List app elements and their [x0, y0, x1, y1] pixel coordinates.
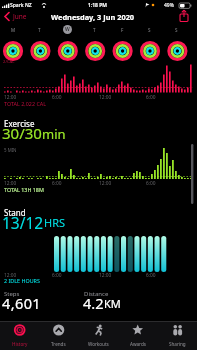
button[interactable]: Awards [118, 321, 157, 350]
button[interactable]: Sharing [158, 321, 197, 350]
staticText: 12:00 [4, 94, 17, 101]
staticText: KM [104, 296, 121, 311]
staticText: 12:00 [99, 94, 112, 101]
staticText: Stand [4, 207, 26, 218]
staticText: F [121, 27, 124, 33]
staticText: Distance [84, 290, 109, 298]
staticText: 12:00 [99, 272, 112, 279]
button[interactable]: June [2, 10, 36, 23]
staticText: S [148, 27, 151, 33]
staticText: June [13, 12, 27, 21]
button[interactable]: Trends [39, 321, 78, 350]
staticText: 1:18 PM [88, 2, 107, 9]
staticText: 12:00 [4, 180, 17, 187]
staticText: Spark NZ [10, 2, 32, 9]
staticText: Workouts [88, 341, 109, 347]
staticText: T [93, 27, 96, 33]
staticText: TOTAL 2,022 CAL [4, 100, 47, 107]
staticText: TOTAL 13H 18M [4, 186, 44, 193]
staticText: History [12, 341, 28, 347]
staticText: 6:00 [146, 180, 156, 187]
staticText: min [42, 125, 66, 143]
button[interactable]: History [0, 321, 39, 350]
staticText: 6:00 [52, 94, 62, 101]
button[interactable] [176, 9, 192, 24]
staticText: Sharing [169, 341, 186, 347]
staticText: 6:00 [52, 272, 62, 279]
staticText: HRS [44, 215, 66, 230]
staticText: 49% [164, 2, 174, 9]
staticText: 2/CAL [3, 59, 15, 65]
staticText: Exercise [4, 118, 35, 129]
staticText: 12:00 [4, 272, 17, 279]
staticText: Wednesday, 3 Jun 2020 [51, 12, 135, 22]
staticText: 4,601 [2, 293, 42, 313]
staticText: 4.2 [83, 293, 104, 313]
staticText: 6:00 [146, 272, 156, 279]
staticText: W [65, 26, 70, 33]
staticText: 12:00 [99, 180, 112, 187]
staticText: S [175, 27, 178, 33]
staticText: 13/12 [2, 212, 44, 233]
staticText: Trends [51, 341, 66, 347]
staticText: 6:00 [146, 94, 156, 101]
staticText: T [38, 27, 41, 33]
staticText: M [11, 27, 16, 33]
staticText: 6:00 [52, 180, 62, 187]
staticText: 5 MIN [4, 147, 17, 153]
staticText: Steps [4, 290, 20, 298]
button[interactable]: Workouts [79, 321, 118, 350]
staticText: 2 IDLE HOURS [4, 277, 40, 284]
staticText: Awards [130, 341, 146, 347]
staticText: 30/30 [2, 123, 42, 143]
